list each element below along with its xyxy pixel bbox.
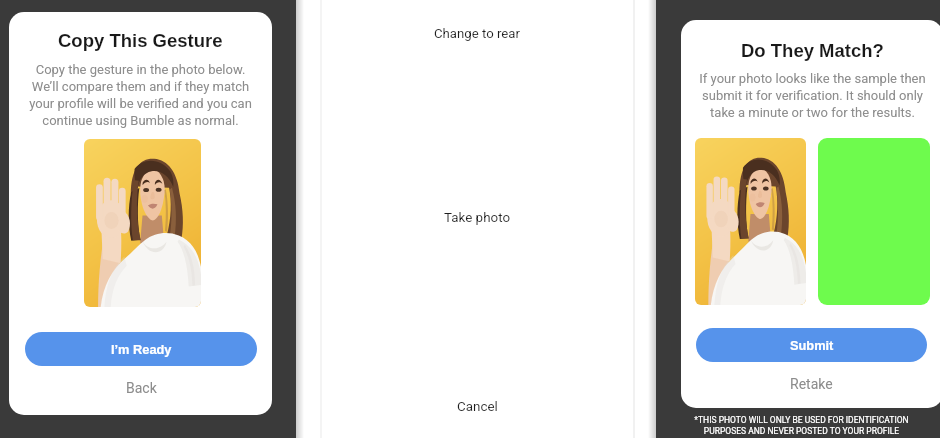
staticText: If your photo looks like the sample then… — [699, 71, 926, 120]
staticText: Take photo — [444, 210, 511, 226]
staticText: *THIS PHOTO WILL ONLY BE USED FOR IDENTI… — [694, 415, 909, 436]
button[interactable]: Cancel — [445, 395, 510, 419]
button[interactable]: I’m Ready — [25, 332, 257, 366]
staticText: Change to rear — [434, 26, 520, 41]
button[interactable]: Take photo — [432, 206, 523, 230]
staticText: Back — [126, 380, 157, 396]
other: Sample gesture photo — [84, 139, 201, 307]
button[interactable]: Submit — [696, 328, 927, 362]
staticText: Do They Match? — [741, 40, 884, 61]
staticText: Retake — [790, 376, 833, 392]
staticText: Submit — [790, 338, 834, 352]
button[interactable]: Change to rear — [422, 22, 532, 45]
staticText: Copy This Gesture — [58, 30, 223, 51]
other: Your captured photo — [818, 138, 930, 305]
staticText: Cancel — [457, 399, 498, 415]
other: Sample gesture photo — [695, 138, 806, 305]
button[interactable]: Retake — [696, 368, 927, 400]
staticText: I’m Ready — [111, 342, 172, 356]
button[interactable]: Back — [25, 372, 257, 404]
staticText: Copy the gesture in the photo below. We’… — [29, 62, 252, 128]
